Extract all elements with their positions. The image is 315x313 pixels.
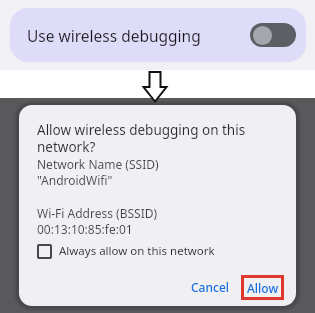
staticText: Always allow on this network [59,243,215,259]
button[interactable]: Cancel [191,273,230,301]
staticText: Wi-Fi Address (BSSID) [37,205,158,221]
staticText: "AndroidWifi" [37,172,113,188]
staticText: Network Name (SSID) [37,156,159,172]
staticText: 00:13:10:85:fe:01 [37,221,133,237]
button[interactable] [250,23,296,47]
button[interactable]: Always allow on this network [37,243,215,259]
staticText: Allow [247,280,279,296]
staticText: Cancel [191,279,230,295]
staticText: Allow wireless debugging on this network… [37,121,246,156]
button[interactable]: Allow [241,275,284,300]
staticText: Use wireless debugging [27,25,201,46]
button[interactable]: Use wireless debugging [10,8,306,62]
